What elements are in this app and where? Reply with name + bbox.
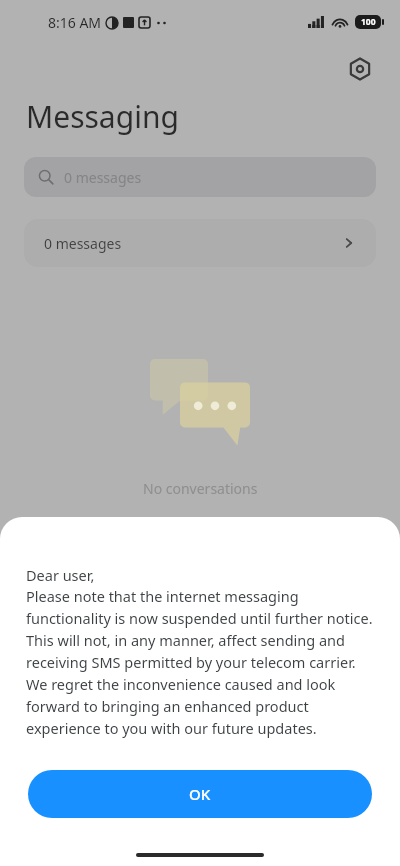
staticText: Messaging	[26, 96, 179, 137]
button[interactable]: 0 messages	[24, 219, 376, 267]
staticText: Dear user, Please note that the internet…	[26, 565, 378, 738]
button[interactable]: 0 messages	[24, 157, 376, 197]
staticText: No conversations	[143, 479, 258, 498]
button[interactable]: OK	[28, 770, 372, 818]
staticText: 0 messages	[44, 234, 122, 253]
staticText: 8:16 AM	[48, 13, 102, 32]
staticText: 100	[361, 16, 376, 28]
button[interactable]: Settings	[342, 51, 378, 87]
staticText: 0 messages	[64, 168, 142, 187]
staticText: OK	[189, 784, 211, 804]
